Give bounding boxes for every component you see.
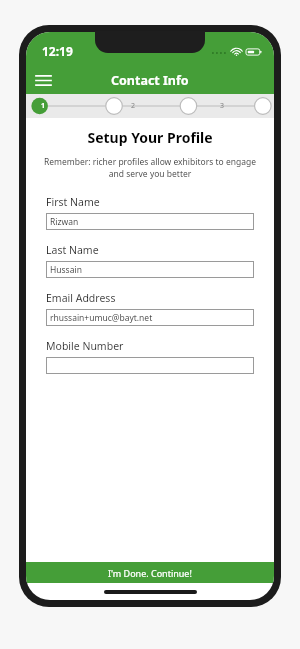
staticText: I'm Done. Continue! — [108, 567, 192, 579]
staticText: Contact Info — [111, 72, 189, 89]
staticText: 3 — [220, 101, 225, 111]
staticText: rhussain+umuc@bayt.net — [50, 312, 153, 324]
button[interactable]: 2 — [122, 94, 144, 118]
staticText: 12:19 — [42, 43, 73, 59]
staticText: First Name — [46, 195, 100, 209]
staticText: Mobile Number — [46, 339, 124, 353]
staticText: 2 — [131, 101, 136, 111]
button[interactable]: rhussain+umuc@bayt.net — [46, 309, 254, 326]
staticText: Rizwan — [50, 216, 79, 228]
staticText: Setup Your Profile — [26, 128, 274, 147]
button[interactable] — [46, 357, 254, 374]
staticText: 1 — [41, 101, 46, 111]
staticText: Hussain — [50, 264, 82, 276]
button[interactable]: Open navigation menu — [26, 66, 60, 94]
staticText: Last Name — [46, 243, 99, 257]
button[interactable]: Hussain — [46, 261, 254, 278]
button[interactable]: Rizwan — [46, 213, 254, 230]
button[interactable]: I'm Done. Continue! — [26, 562, 274, 583]
staticText: Email Address — [46, 291, 116, 305]
button[interactable]: 3 — [211, 94, 233, 118]
staticText: Remember: richer profiles allow exhibito… — [38, 156, 262, 180]
button[interactable]: 1 — [32, 94, 54, 118]
